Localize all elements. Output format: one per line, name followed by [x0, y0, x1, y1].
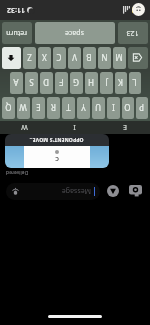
staticText: M: [115, 52, 123, 63]
button[interactable]: M: [113, 47, 126, 69]
button[interactable]: T: [62, 97, 75, 119]
button[interactable]: R: [47, 97, 60, 119]
button[interactable]: Delete: [128, 47, 148, 69]
staticText: S: [29, 77, 34, 88]
staticText: P: [139, 102, 144, 113]
staticText: T: [66, 102, 71, 113]
button[interactable]: I: [50, 121, 100, 134]
button[interactable]: Contact avatar: [132, 3, 145, 16]
staticText: Z: [27, 52, 32, 63]
button[interactable]: P: [136, 97, 148, 119]
staticText: H: [88, 77, 94, 88]
staticText: O: [124, 102, 131, 113]
button[interactable]: U: [92, 97, 105, 119]
staticText: OPPONENT'S MOVE..: [29, 136, 84, 143]
staticText: W: [19, 102, 27, 113]
staticText: I: [73, 122, 76, 132]
button[interactable]: A: [10, 72, 23, 94]
button[interactable]: 123: [118, 22, 148, 44]
staticText: C: [55, 155, 59, 163]
button[interactable]: O: [122, 97, 134, 119]
button[interactable]: S: [25, 72, 38, 94]
button[interactable]: L: [129, 72, 141, 94]
button[interactable]: J: [100, 72, 113, 94]
staticText: 123: [126, 28, 139, 38]
staticText: N: [101, 52, 108, 63]
button[interactable]: Apps: [105, 183, 122, 200]
staticText: B: [86, 52, 92, 63]
staticText: R: [51, 102, 56, 113]
button[interactable]: F: [55, 72, 68, 94]
button[interactable]: K: [115, 72, 127, 94]
staticText: J: [105, 77, 108, 88]
button[interactable]: I: [107, 97, 120, 119]
staticText: Q: [5, 102, 12, 113]
button[interactable]: Shift: [2, 47, 21, 69]
button[interactable]: X: [38, 47, 51, 69]
button[interactable]: Dictate: [9, 185, 22, 198]
button[interactable]: E: [32, 97, 45, 119]
button[interactable]: Y: [77, 97, 90, 119]
staticText: L: [132, 77, 137, 88]
button[interactable]: B: [83, 47, 96, 69]
staticText: Y: [81, 102, 86, 113]
button[interactable]: V: [68, 47, 81, 69]
button[interactable]: N: [98, 47, 111, 69]
button[interactable]: C: [53, 47, 66, 69]
staticText: 11:32: [7, 5, 25, 15]
button[interactable]: W: [0, 121, 50, 134]
staticText: E: [36, 102, 41, 113]
staticText: K: [118, 77, 123, 88]
button[interactable]: Camera: [127, 183, 144, 200]
button[interactable]: Message: [6, 183, 100, 200]
button[interactable]: H: [85, 72, 98, 94]
button[interactable]: return: [2, 22, 32, 44]
staticText: W: [21, 122, 28, 132]
button[interactable]: W: [17, 97, 30, 119]
button[interactable]: Z: [23, 47, 36, 69]
staticText: E: [123, 122, 127, 132]
staticText: Message: [22, 186, 91, 196]
staticText: D: [43, 77, 49, 88]
button[interactable]: E: [100, 121, 150, 134]
button[interactable]: G: [70, 72, 83, 94]
staticText: U: [95, 102, 101, 113]
staticText: I: [112, 102, 115, 113]
staticText: F: [59, 77, 64, 88]
button[interactable]: space: [35, 22, 115, 44]
button[interactable]: D: [40, 72, 53, 94]
staticText: A: [13, 77, 19, 88]
staticText: X: [42, 52, 47, 63]
staticText: V: [72, 52, 77, 63]
staticText: return: [6, 28, 27, 38]
staticText: space: [65, 28, 84, 38]
staticText: Delivered: [6, 169, 29, 176]
button[interactable]: Q: [2, 97, 15, 119]
staticText: G: [73, 77, 79, 88]
staticText: C: [56, 52, 62, 63]
button[interactable]: C: [5, 134, 109, 168]
